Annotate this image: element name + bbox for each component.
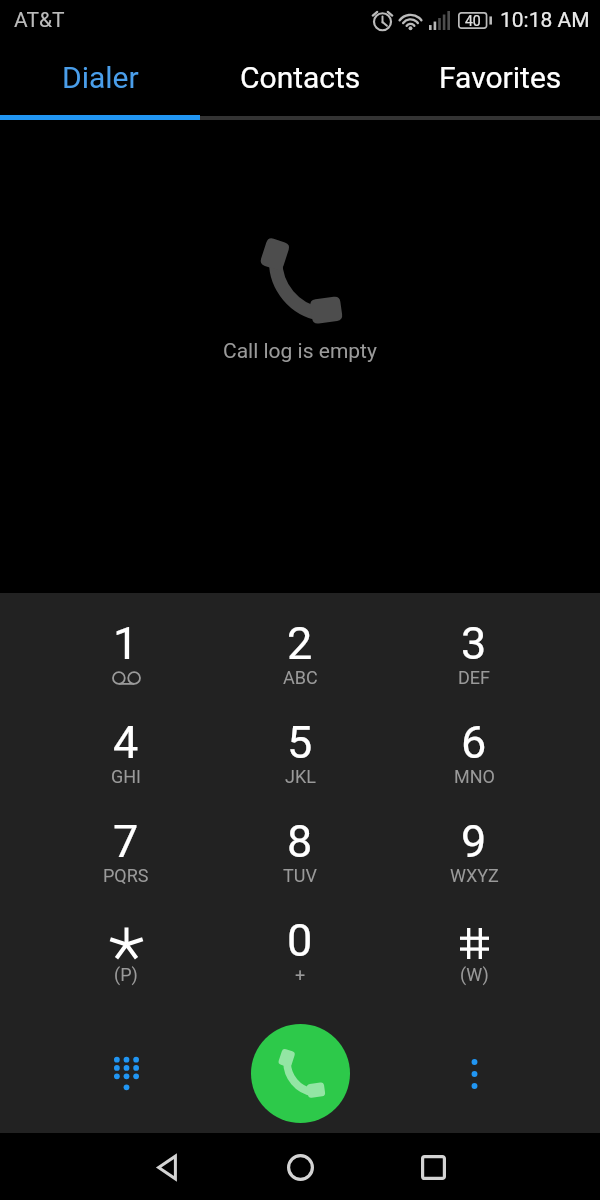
- staticText: 8: [287, 815, 313, 861]
- staticText: 10:18 AM: [500, 8, 590, 33]
- staticText: 0: [287, 914, 313, 960]
- staticText: 9: [461, 815, 487, 861]
- staticText: 5: [287, 716, 313, 762]
- button[interactable]: 7: [39, 816, 213, 915]
- staticText: Favorites: [439, 60, 562, 95]
- staticText: Contacts: [240, 60, 361, 95]
- staticText: Call log is empty: [223, 339, 377, 364]
- button[interactable]: Dialer: [0, 45, 200, 120]
- staticText: 2: [287, 617, 313, 663]
- staticText: 6: [461, 716, 487, 762]
- button[interactable]: 1: [39, 618, 213, 717]
- staticText: 40: [465, 13, 481, 29]
- button[interactable]: 6: [387, 717, 561, 816]
- staticText: 1: [113, 617, 139, 663]
- staticText: MNO: [454, 766, 495, 787]
- staticText: DEF: [458, 667, 490, 688]
- button[interactable]: Back: [121, 1139, 212, 1195]
- button[interactable]: 4: [39, 717, 213, 816]
- staticText: GHI: [111, 766, 141, 787]
- button[interactable]: 3: [387, 618, 561, 717]
- button[interactable]: 9: [387, 816, 561, 915]
- button[interactable]: Contacts: [200, 45, 400, 120]
- staticText: PQRS: [103, 865, 149, 886]
- button[interactable]: Call: [251, 1024, 350, 1123]
- staticText: (W): [460, 964, 489, 985]
- staticText: JKL: [285, 766, 316, 787]
- staticText: 4: [113, 716, 139, 762]
- button[interactable]: 2: [213, 618, 387, 717]
- button[interactable]: 5: [213, 717, 387, 816]
- button[interactable]: Favorites: [400, 45, 600, 120]
- staticText: 3: [461, 617, 487, 663]
- staticText: ABC: [283, 667, 318, 688]
- button[interactable]: Recents: [388, 1139, 479, 1195]
- button[interactable]: 8: [213, 816, 387, 915]
- button[interactable]: More options: [387, 1014, 561, 1133]
- staticText: WXYZ: [450, 865, 499, 886]
- staticText: Dialer: [62, 60, 139, 95]
- staticText: TUV: [283, 865, 317, 886]
- button[interactable]: (P): [39, 915, 213, 1014]
- staticText: AT&T: [14, 8, 65, 33]
- button[interactable]: Home: [255, 1139, 346, 1195]
- button[interactable]: (W): [387, 915, 561, 1014]
- button[interactable]: 0: [213, 915, 387, 1014]
- staticText: 7: [113, 815, 139, 861]
- button[interactable]: Dialpad: [39, 1014, 213, 1133]
- staticText: +: [295, 964, 306, 985]
- staticText: (P): [114, 964, 138, 985]
